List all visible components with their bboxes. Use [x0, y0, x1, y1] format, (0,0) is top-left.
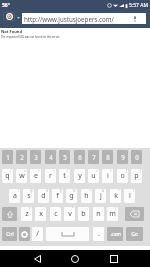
button[interactable]: f [52, 189, 63, 203]
button[interactable]: j [95, 189, 106, 203]
button[interactable]: u [88, 169, 99, 183]
staticText: & [102, 189, 105, 193]
button[interactable]: Tab options [16, 15, 21, 20]
button[interactable]: i [102, 169, 113, 183]
button[interactable]: r [45, 169, 56, 183]
button[interactable]: Recents [106, 251, 122, 267]
button[interactable]: 7 [88, 150, 99, 164]
staticText: - [44, 207, 45, 211]
button[interactable]: . [93, 227, 104, 241]
button[interactable]: 3 [30, 150, 41, 164]
button[interactable]: g [66, 189, 77, 203]
button[interactable]: Home [67, 251, 83, 267]
button[interactable]: 4 [45, 150, 56, 164]
staticText: 56° [2, 2, 10, 9]
button[interactable]: Voice search [132, 16, 138, 22]
staticText: + [10, 169, 12, 173]
button[interactable]: s [23, 189, 34, 203]
button[interactable]: Tabs [3, 12, 15, 21]
staticText: % [73, 189, 76, 193]
staticText: 1 [6, 153, 10, 161]
staticText: 5:57 AM [129, 2, 148, 9]
button[interactable]: Back [29, 251, 45, 267]
button[interactable]: k [110, 189, 121, 203]
staticText: 7 [92, 153, 96, 161]
staticText: m [109, 209, 116, 219]
button[interactable]: 9 [117, 150, 128, 164]
staticText: / [36, 229, 39, 239]
staticText: ] [140, 169, 141, 173]
button[interactable]: 5 [59, 150, 70, 164]
button[interactable]: l [124, 189, 135, 203]
button[interactable]: t [59, 169, 70, 183]
staticText: ' [59, 207, 60, 211]
staticText: . [98, 229, 100, 239]
staticText: : [87, 207, 88, 211]
staticText: 8 [106, 153, 110, 161]
button[interactable]: http://www.justusjoepers.com/ [22, 13, 146, 24]
staticText: g [69, 191, 74, 201]
staticText: a [13, 191, 17, 201]
button[interactable]: e [30, 169, 41, 183]
staticText: 5 [63, 153, 67, 161]
button[interactable]: Backspace [125, 207, 144, 221]
staticText: q [5, 171, 10, 181]
button[interactable]: .com [107, 227, 123, 241]
staticText: p [134, 171, 139, 181]
button[interactable]: y [74, 169, 85, 183]
button[interactable]: / [32, 227, 43, 241]
staticText: # [46, 189, 48, 193]
button[interactable]: p [131, 169, 142, 183]
staticText: 0 [135, 153, 139, 161]
button[interactable]: 1 [2, 150, 13, 164]
staticText: r [49, 171, 52, 181]
button[interactable]: 8 [102, 150, 113, 164]
staticText: Go [131, 231, 138, 238]
button[interactable]: 0 [131, 150, 142, 164]
button[interactable]: n [93, 207, 104, 221]
staticText: " [72, 207, 74, 211]
staticText: 4 [49, 153, 53, 161]
button[interactable]: b [78, 207, 89, 221]
staticText: n [96, 209, 101, 219]
button[interactable]: Shift [2, 207, 17, 221]
button[interactable]: 2 [16, 150, 27, 164]
button[interactable]: z [21, 207, 32, 221]
staticText: ÷ [38, 169, 40, 173]
staticText: e [34, 171, 38, 181]
staticText: 2 [20, 153, 24, 161]
staticText: z [25, 209, 29, 219]
button[interactable]: q [2, 169, 13, 183]
button[interactable]: o [117, 169, 128, 183]
button[interactable]: 6 [74, 150, 85, 164]
staticText: / [67, 169, 69, 173]
staticText: x [39, 209, 43, 219]
button[interactable]: h [81, 189, 92, 203]
button[interactable]: x [35, 207, 46, 221]
staticText: 3 [34, 153, 38, 161]
staticText: d [41, 191, 46, 201]
staticText: The requested URL was not found on this … [1, 35, 60, 39]
button[interactable]: Ctrl [2, 227, 17, 241]
staticText: > [110, 169, 112, 173]
button[interactable]: Keyboard settings [19, 227, 30, 241]
button[interactable]: m [107, 207, 118, 221]
button[interactable]: Space [46, 227, 89, 241]
button[interactable]: v [64, 207, 75, 221]
staticText: v [68, 209, 72, 219]
staticText: ! [18, 189, 19, 193]
button[interactable]: w [16, 169, 27, 183]
button[interactable]: d [38, 189, 49, 203]
staticText: @ [30, 189, 33, 193]
button[interactable]: Go [126, 227, 143, 241]
button[interactable]: a [9, 189, 20, 203]
staticText: ( [133, 189, 134, 193]
staticText: o [120, 171, 125, 181]
button[interactable]: c [50, 207, 61, 221]
